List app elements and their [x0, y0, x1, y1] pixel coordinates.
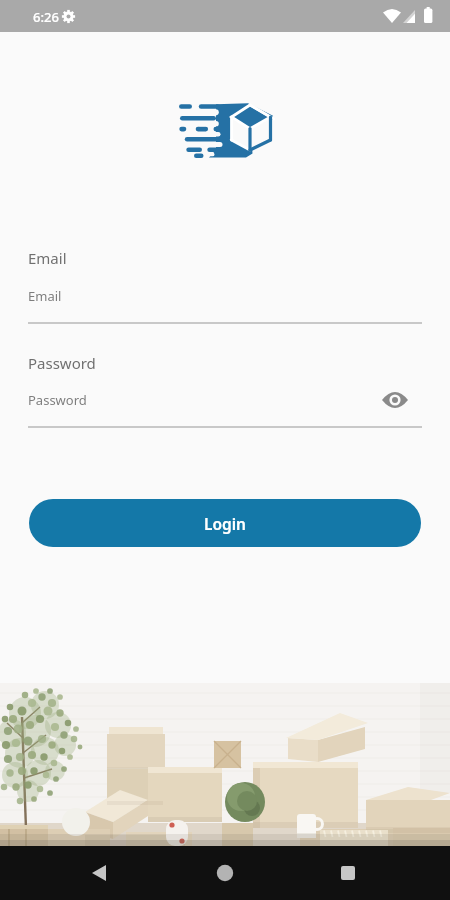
button[interactable] [70, 846, 130, 900]
button[interactable]: Email [28, 282, 422, 324]
staticText: Password [28, 353, 96, 373]
staticText: Email [28, 248, 67, 268]
button[interactable] [195, 846, 255, 900]
button[interactable] [318, 846, 378, 900]
button[interactable]: Password [28, 386, 422, 428]
staticText: Login [204, 513, 247, 534]
staticText: Password [28, 391, 87, 409]
button[interactable] [378, 386, 412, 414]
staticText: Email [28, 287, 62, 305]
button[interactable]: Login [29, 499, 421, 547]
staticText: 6:26 [33, 8, 59, 26]
